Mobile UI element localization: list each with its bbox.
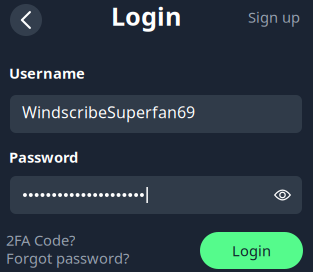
button[interactable]: 2FA Code? <box>6 231 156 249</box>
button[interactable]: Sign up <box>240 6 300 28</box>
staticText: Login <box>111 0 181 33</box>
staticText: WindscribeSuperfan69 <box>22 101 195 123</box>
button[interactable]: Show password <box>272 183 292 207</box>
staticText: Password <box>9 147 78 167</box>
staticText: Sign up <box>248 7 300 27</box>
button[interactable]: Forgot password? <box>6 249 156 267</box>
staticText: Login <box>232 241 271 260</box>
staticText: Forgot password? <box>6 248 129 268</box>
button[interactable]: WindscribeSuperfan69 <box>10 95 302 133</box>
staticText: Username <box>9 63 85 83</box>
staticText: 2FA Code? <box>6 230 75 250</box>
button[interactable]: Back <box>10 4 42 36</box>
button[interactable]: Login <box>200 232 303 269</box>
